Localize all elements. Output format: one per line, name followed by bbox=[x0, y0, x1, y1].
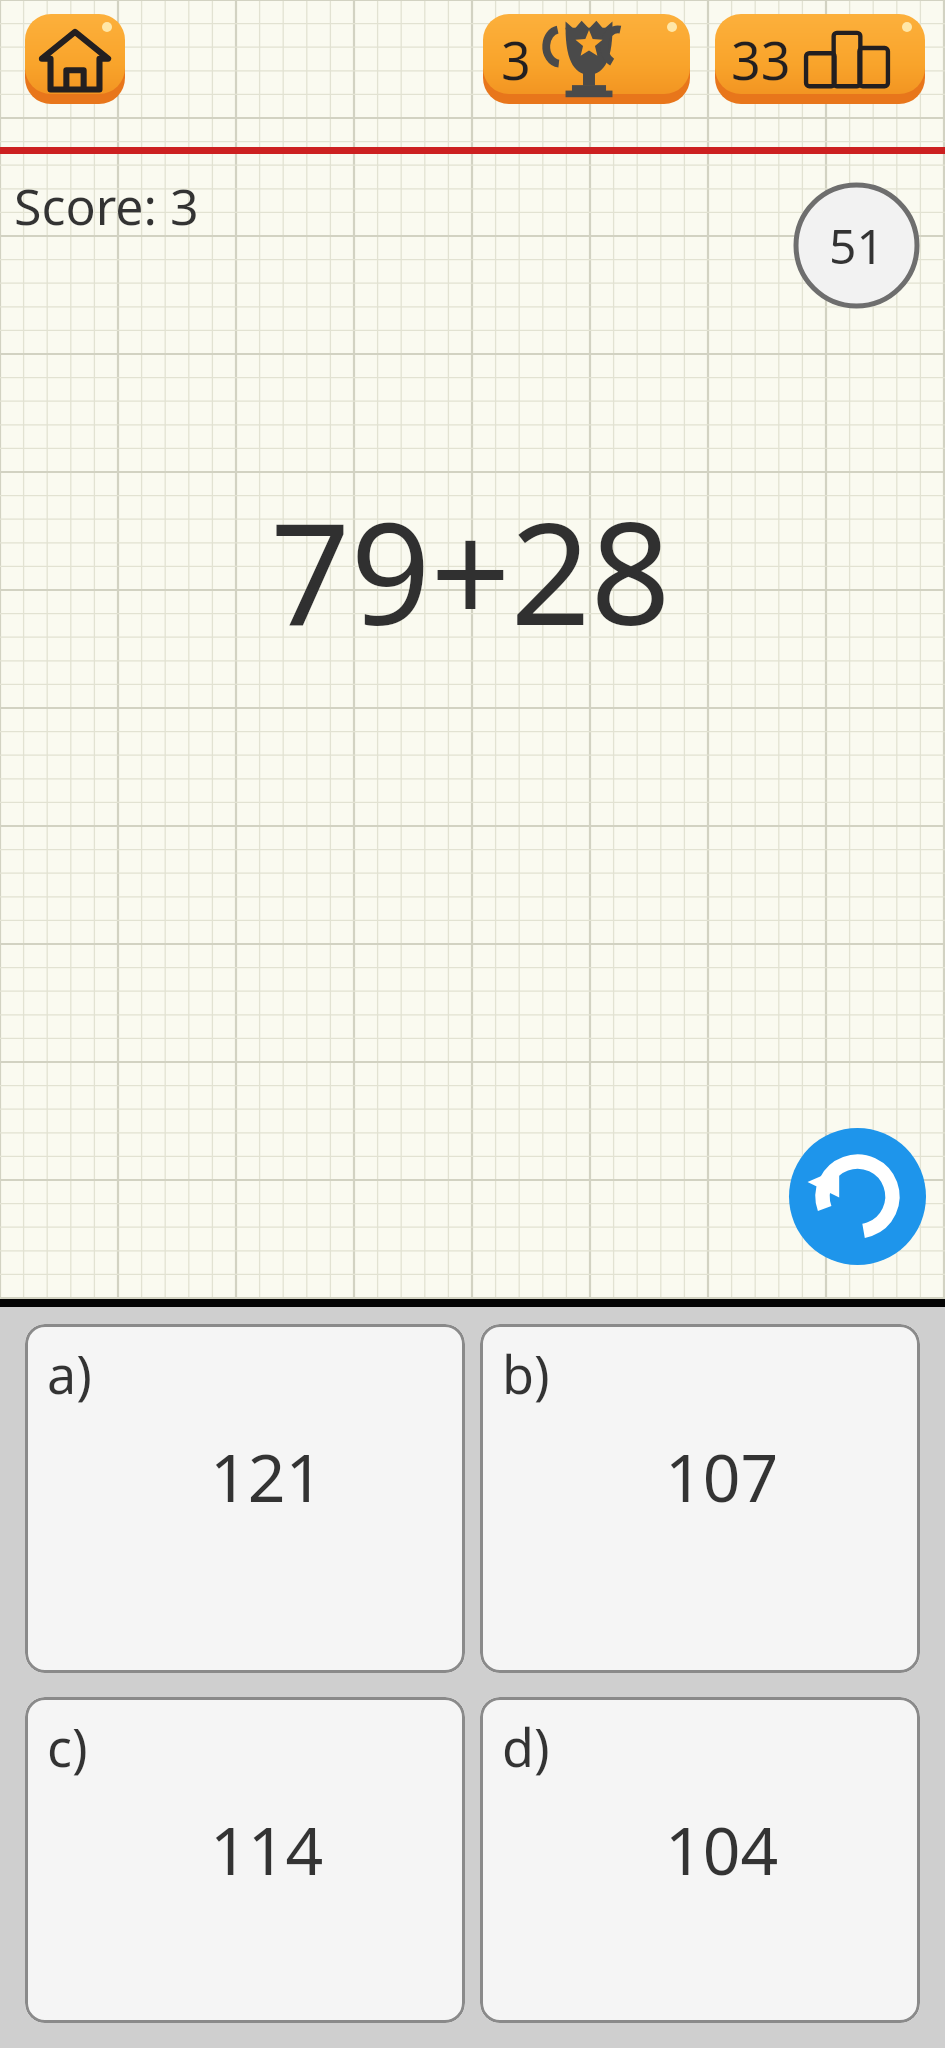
staticText: c) bbox=[47, 1711, 88, 1782]
staticText: 33 bbox=[731, 24, 791, 95]
staticText: b) bbox=[502, 1338, 550, 1409]
button[interactable]: Home bbox=[25, 14, 125, 104]
staticText: Score: 3 bbox=[14, 172, 199, 240]
staticText: 3 bbox=[501, 24, 531, 95]
staticText: 114 bbox=[210, 1804, 324, 1894]
button[interactable]: 33 bbox=[715, 14, 925, 104]
staticText: 121 bbox=[210, 1431, 324, 1521]
button[interactable]: b) bbox=[480, 1324, 920, 1673]
staticText: a) bbox=[47, 1338, 92, 1409]
button[interactable]: d) bbox=[480, 1697, 920, 2023]
staticText: 107 bbox=[665, 1431, 779, 1521]
staticText: d) bbox=[502, 1711, 550, 1782]
staticText: 79+28 bbox=[270, 475, 671, 666]
button[interactable]: Restart bbox=[789, 1128, 926, 1265]
button[interactable]: a) bbox=[25, 1324, 465, 1673]
staticText: 51 bbox=[829, 213, 884, 278]
button[interactable]: 3 bbox=[483, 14, 690, 104]
staticText: 104 bbox=[665, 1804, 779, 1894]
button[interactable]: c) bbox=[25, 1697, 465, 2023]
